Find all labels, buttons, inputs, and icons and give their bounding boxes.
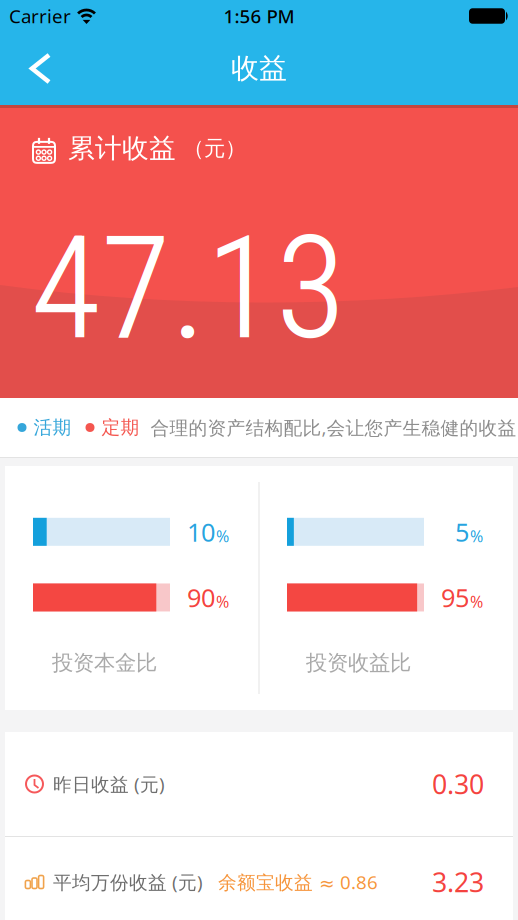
staticText: 5 (455, 515, 469, 549)
button[interactable]: 昨日收益 (元) (5, 732, 513, 836)
staticText: % (216, 591, 229, 612)
staticText: 3.23 (432, 864, 484, 900)
staticText: 累计收益 (68, 132, 176, 165)
button[interactable]: 平均万份收益 (元) (5, 837, 513, 920)
staticText: 47.13 (31, 205, 346, 372)
staticText: % (470, 591, 483, 612)
staticText: 活期 (33, 416, 71, 439)
staticText: 投资收益比 (306, 650, 411, 676)
staticText: 1:56 PM (223, 4, 294, 28)
staticText: % (470, 525, 483, 547)
staticText: 投资本金比 (52, 650, 157, 676)
staticText: 余额宝收益 ≈ 0.86 (218, 870, 378, 894)
staticText: 合理的资产结构配比,会让您产生稳健的收益 (150, 415, 516, 440)
staticText: （元） (183, 135, 246, 161)
staticText: 95 (441, 581, 469, 614)
staticText: 昨日收益 (元) (53, 772, 165, 796)
staticText: 收益 (231, 51, 287, 86)
staticText: % (216, 525, 229, 547)
staticText: 90 (187, 581, 215, 614)
staticText: 平均万份收益 (元) (53, 870, 203, 894)
staticText: Carrier (9, 4, 71, 28)
staticText: 定期 (101, 416, 139, 439)
staticText: 0.30 (432, 766, 484, 802)
button[interactable]: Back (0, 34, 66, 102)
staticText: 10 (187, 515, 215, 549)
